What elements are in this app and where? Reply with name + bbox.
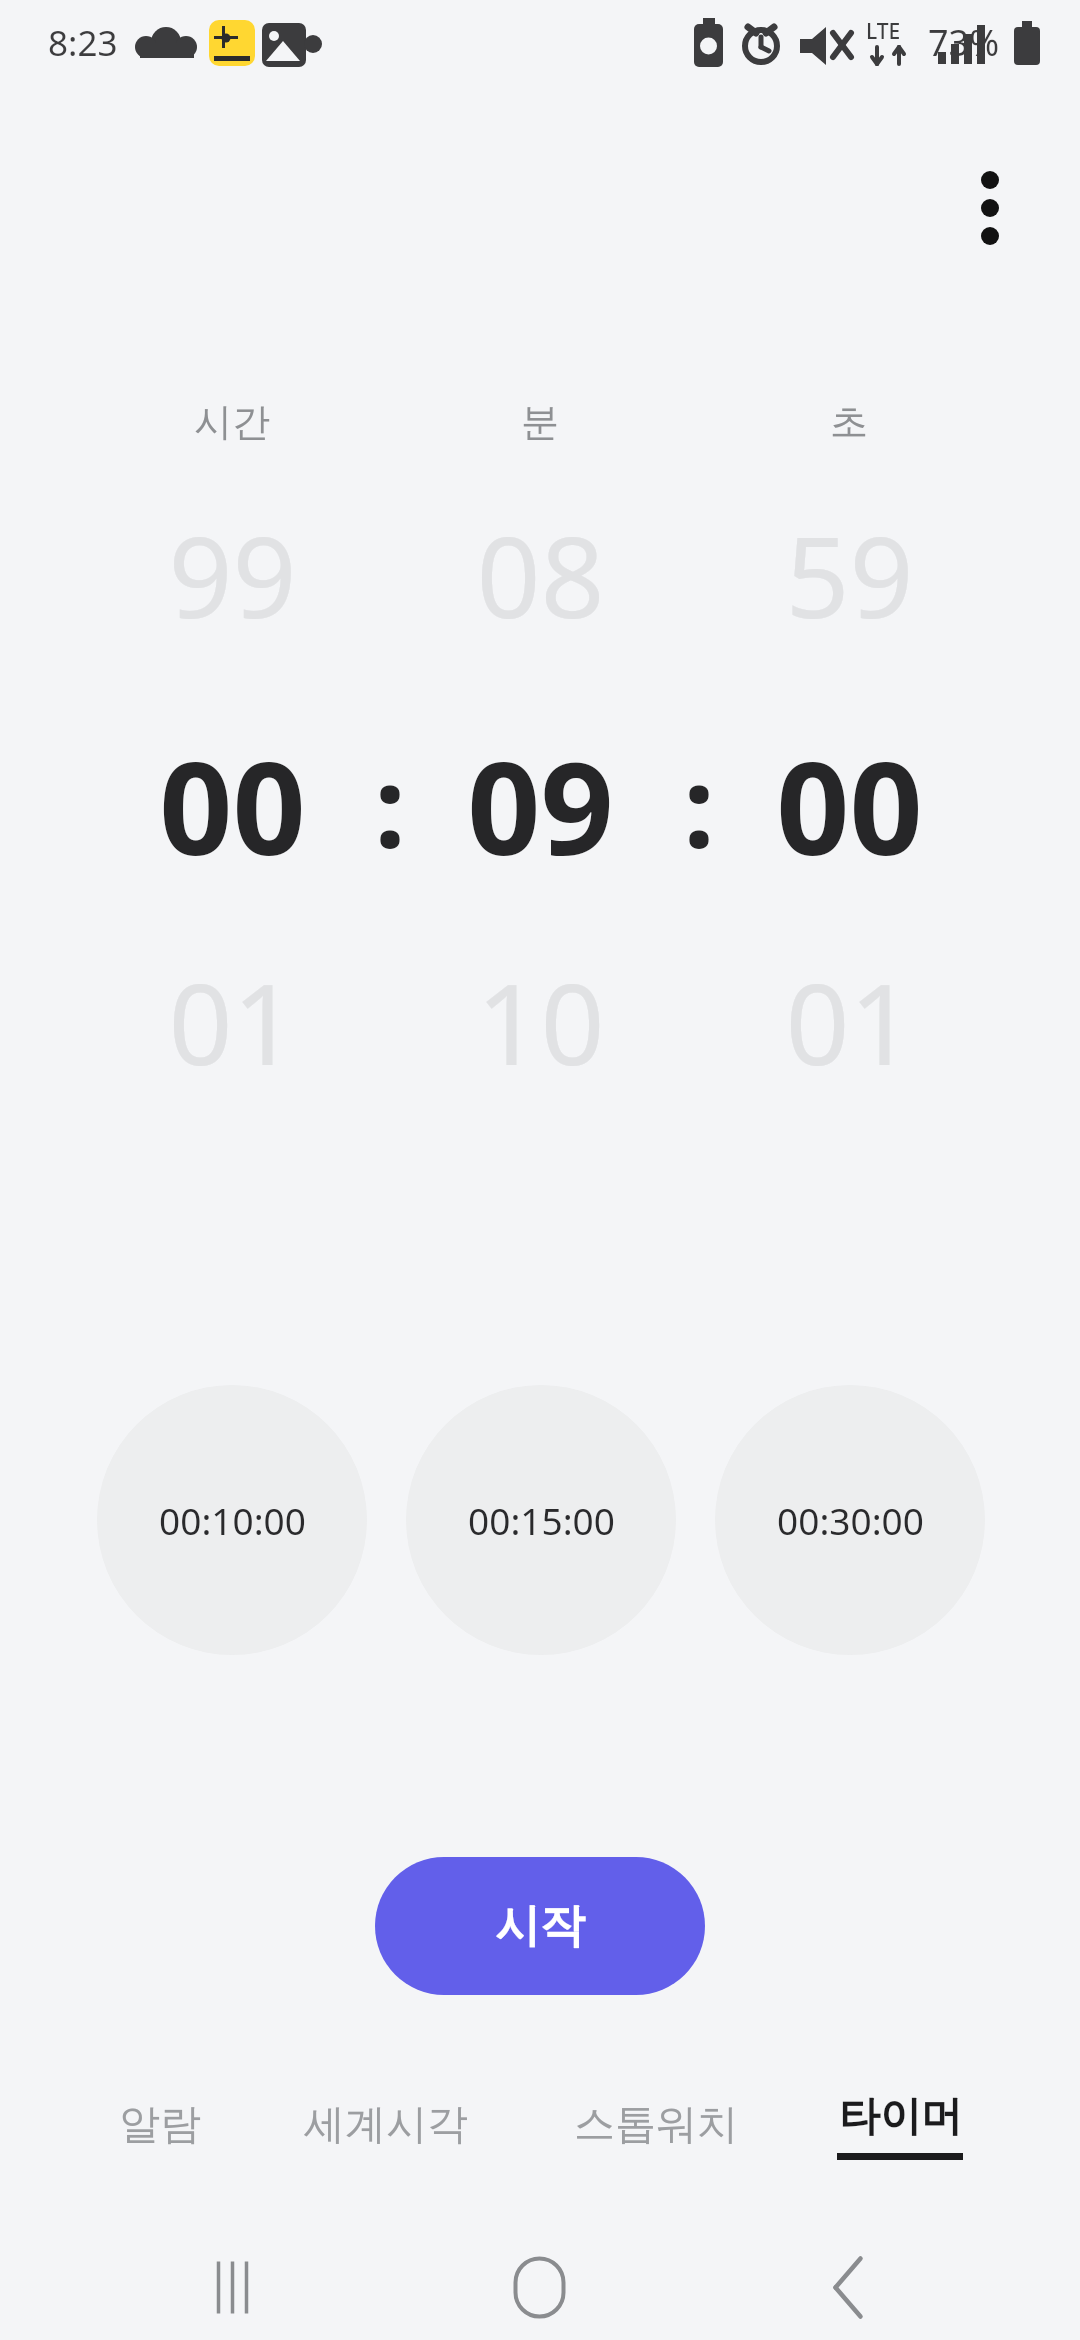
- staticText: 타이머: [839, 2091, 962, 2143]
- staticText: 분: [521, 398, 559, 446]
- staticText: 시간: [194, 398, 270, 446]
- button[interactable]: More options: [942, 152, 1038, 248]
- staticText: 01: [785, 945, 914, 1095]
- button[interactable]: 시작: [375, 1857, 705, 1995]
- staticText: 00:10:00: [159, 1495, 306, 1545]
- staticText: 00:30:00: [777, 1495, 924, 1545]
- staticText: :: [683, 728, 715, 881]
- staticText: 59: [785, 498, 914, 648]
- button[interactable]: 세계시각: [246, 2062, 526, 2188]
- staticText: 00: [159, 718, 306, 892]
- staticText: 8:23: [48, 19, 118, 67]
- button[interactable]: 09: [380, 712, 700, 897]
- staticText: :: [374, 728, 406, 881]
- staticText: 세계시각: [304, 2099, 468, 2151]
- button[interactable]: Home: [412, 2235, 667, 2340]
- staticText: LTE: [866, 17, 901, 46]
- staticText: 08: [476, 498, 605, 648]
- button[interactable]: 알람: [55, 2062, 265, 2188]
- button[interactable]: 스톱워치: [516, 2062, 796, 2188]
- staticText: 10: [476, 945, 605, 1095]
- button[interactable]: 00: [72, 712, 392, 897]
- staticText: 00:15:00: [468, 1495, 615, 1545]
- staticText: 스톱워치: [574, 2099, 738, 2151]
- staticText: 알람: [119, 2099, 201, 2151]
- button[interactable]: 00:10:00: [97, 1385, 367, 1655]
- staticText: 초: [830, 398, 868, 446]
- staticText: 73%: [928, 18, 1000, 67]
- button[interactable]: 00: [689, 712, 1009, 897]
- button[interactable]: 타이머: [795, 2062, 1005, 2188]
- button[interactable]: Back: [720, 2235, 975, 2340]
- staticText: 99: [168, 498, 297, 648]
- button[interactable]: 00:15:00: [406, 1385, 676, 1655]
- staticText: 시작: [495, 1898, 585, 1955]
- staticText: 09: [467, 718, 614, 892]
- staticText: 00: [776, 718, 923, 892]
- button[interactable]: 00:30:00: [715, 1385, 985, 1655]
- staticText: 01: [168, 945, 297, 1095]
- button[interactable]: Recent apps: [105, 2235, 360, 2340]
